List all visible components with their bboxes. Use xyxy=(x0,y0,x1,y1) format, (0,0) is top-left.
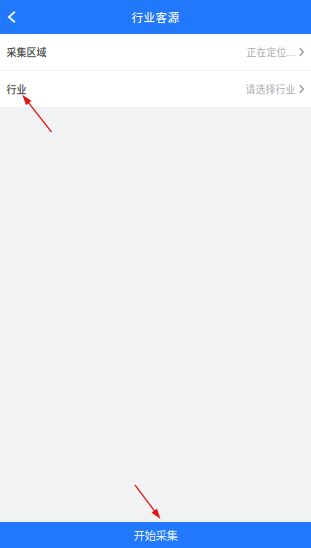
staticText: 开始采集 xyxy=(133,527,177,543)
button[interactable]: 行业 xyxy=(0,71,311,107)
staticText: 采集区域 xyxy=(6,45,46,59)
button[interactable]: 采集区域 xyxy=(0,34,311,70)
button[interactable]: 开始采集 xyxy=(0,522,311,548)
staticText: 行业客源 xyxy=(131,9,179,25)
staticText: 行业 xyxy=(6,82,26,96)
button[interactable]: Back xyxy=(0,0,26,34)
staticText: 正在定位... xyxy=(246,45,295,59)
staticText: 请选择行业 xyxy=(245,82,295,96)
